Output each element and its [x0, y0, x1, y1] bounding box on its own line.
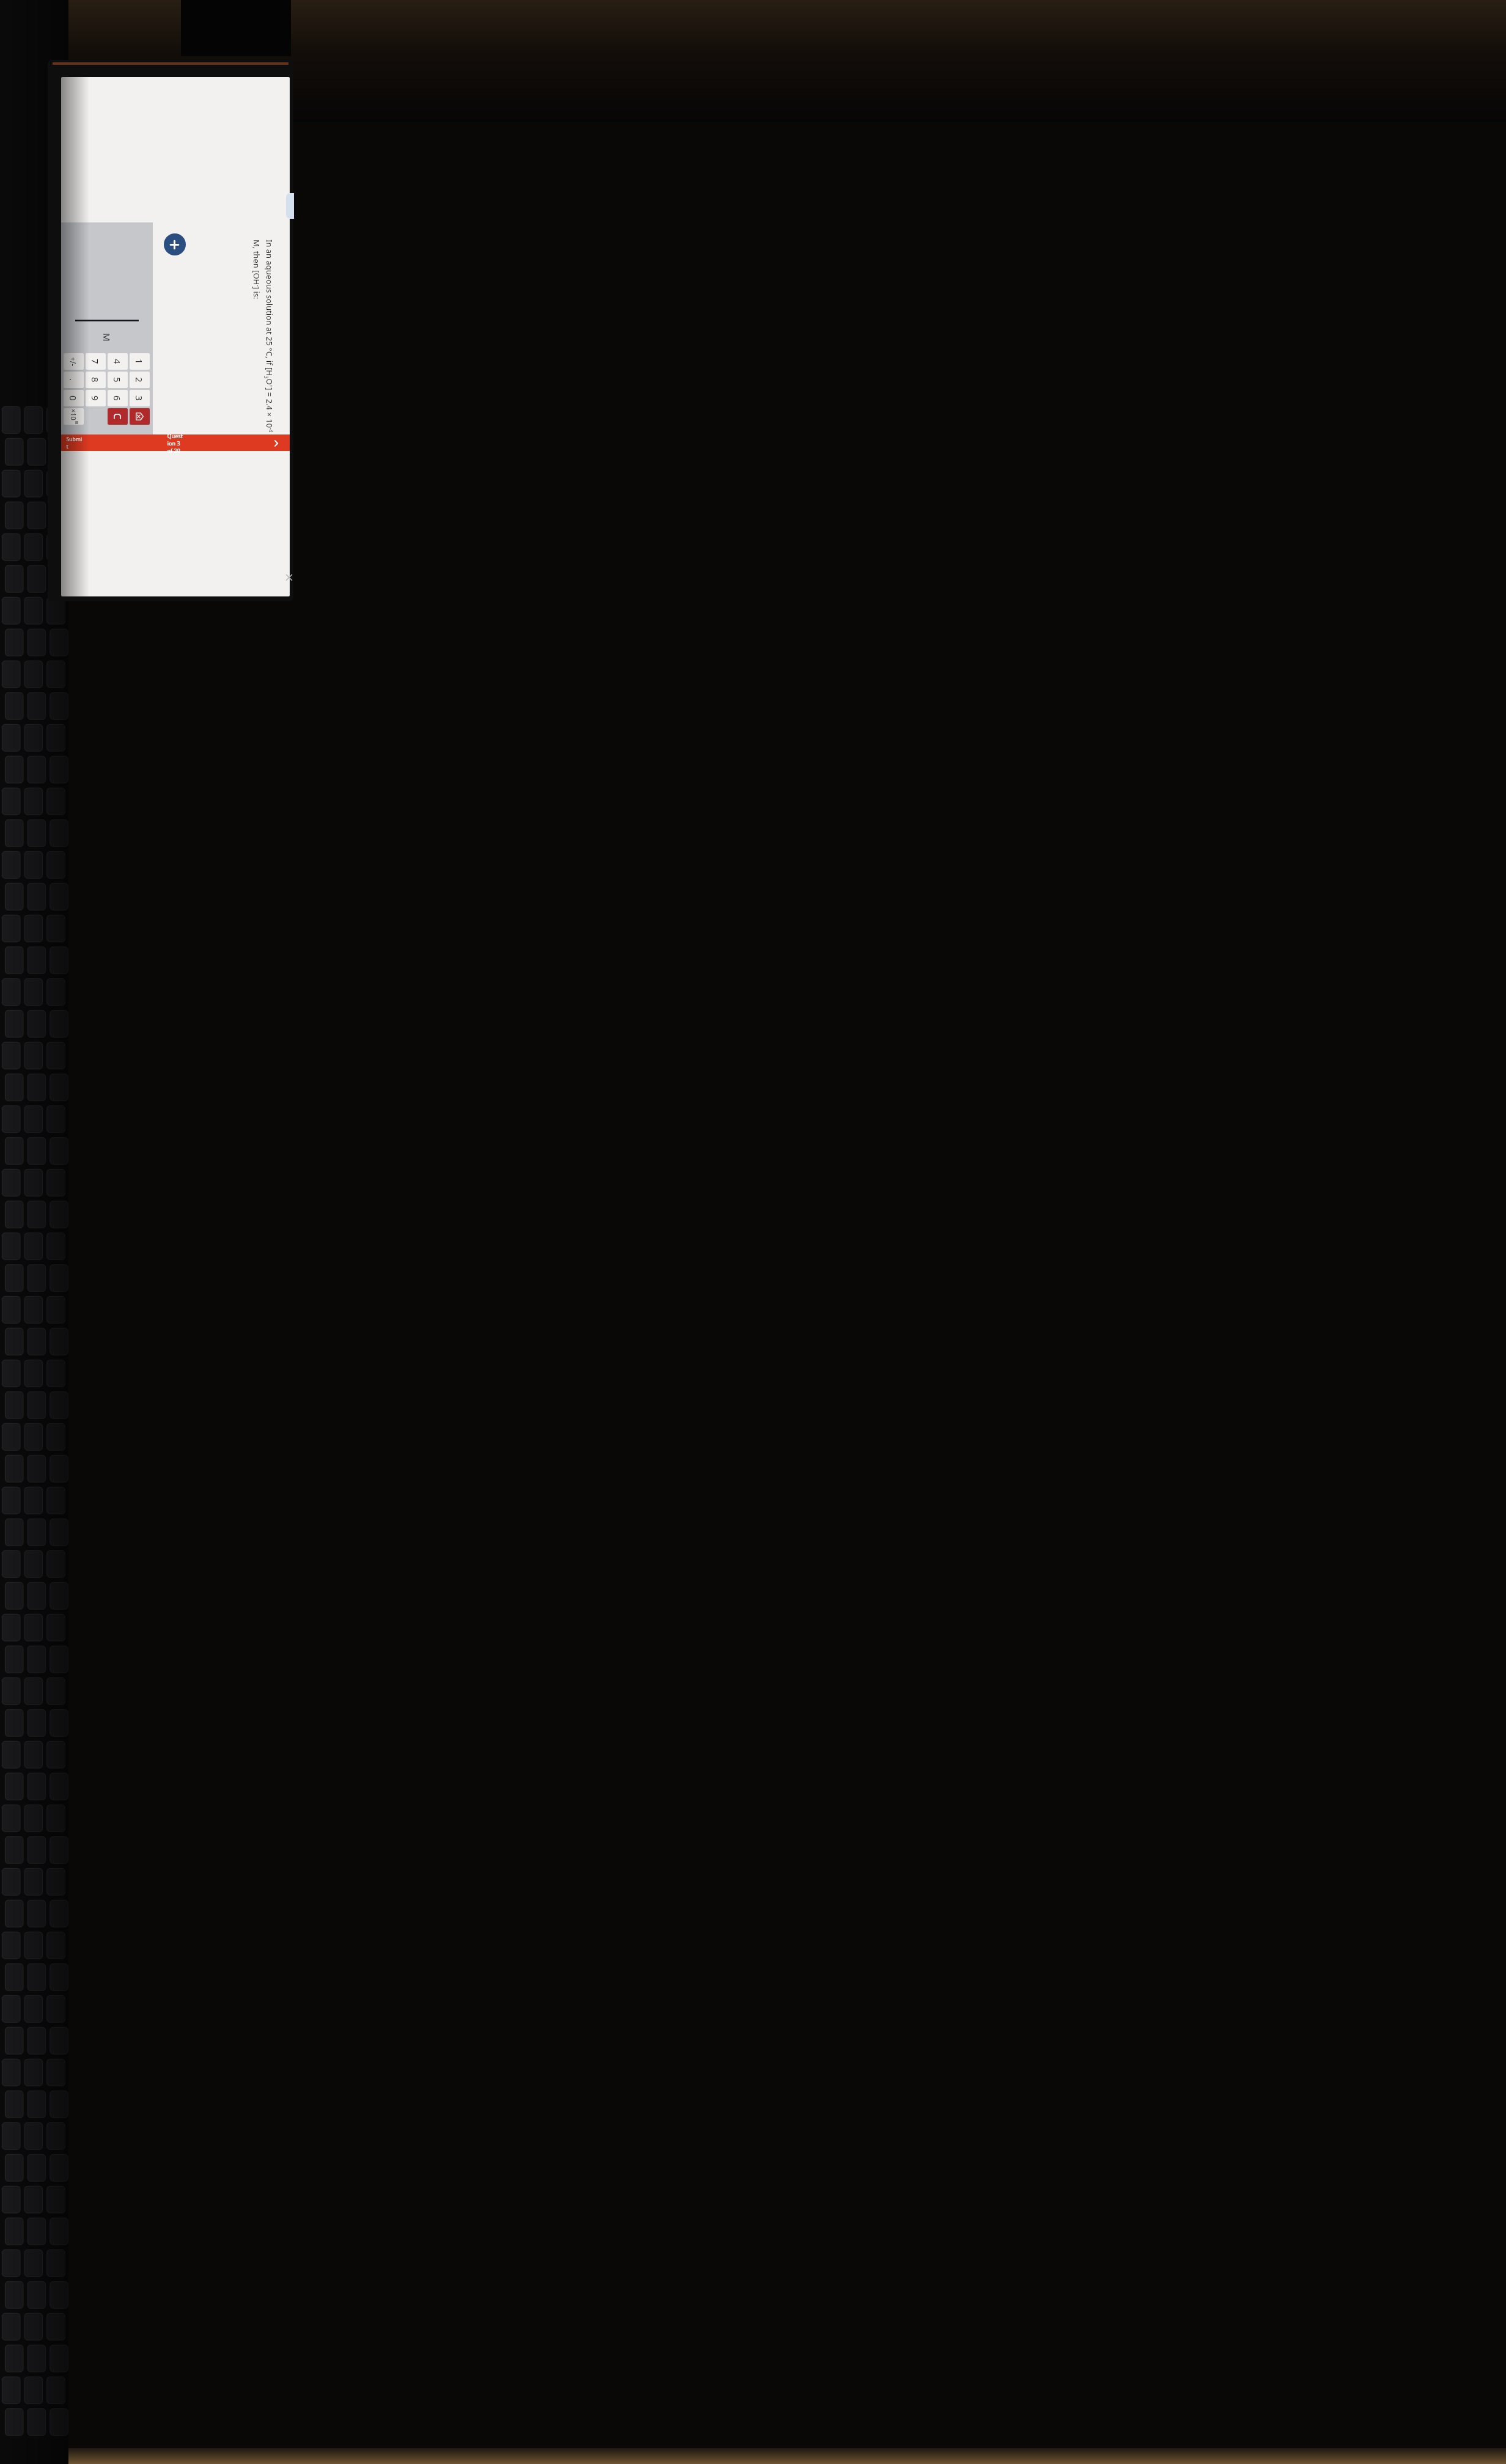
staticText: . [67, 378, 79, 381]
button[interactable]: Add [164, 233, 186, 255]
staticText: 5 [111, 377, 123, 383]
button[interactable]: 8 [86, 372, 106, 388]
staticText: C [111, 413, 124, 420]
staticText: Submit [66, 435, 83, 450]
button[interactable]: 2 [130, 372, 150, 388]
button[interactable]: 5 [108, 372, 128, 388]
staticText: 3 [133, 395, 145, 401]
staticText: In an aqueous solution at 25 °C, if [H3O… [251, 240, 275, 435]
button[interactable]: 7 [86, 353, 106, 370]
button[interactable]: Submit [67, 435, 82, 451]
button[interactable]: +/- [64, 353, 84, 370]
staticText: 7 [89, 359, 101, 364]
button[interactable]: 3 [130, 390, 150, 406]
button[interactable]: . [64, 372, 84, 388]
staticText: 0 [67, 395, 79, 401]
other: Close [285, 573, 293, 582]
button[interactable]: 9 [86, 390, 106, 406]
staticText: Question 3 of 20 [167, 432, 184, 454]
staticText: 2 [133, 377, 145, 383]
staticText: +/- [68, 357, 78, 367]
staticText: 4 [111, 359, 123, 364]
button[interactable]: 4 [108, 353, 128, 370]
button[interactable]: Backspace [130, 408, 150, 425]
staticText: 6 [111, 395, 123, 401]
button[interactable]: Question 3 of 20 [164, 435, 186, 451]
button[interactable]: 0 [64, 390, 84, 406]
button[interactable]: Back [270, 437, 282, 449]
staticText: 8 [89, 377, 101, 383]
button[interactable]: 6 [108, 390, 128, 406]
button[interactable]: Answer [75, 320, 139, 324]
button[interactable]: 1 [130, 353, 150, 370]
staticText: 1 [133, 359, 145, 364]
button[interactable]: Clear [108, 408, 128, 425]
staticText: M [101, 333, 113, 342]
staticText: ×10 [69, 409, 78, 420]
button[interactable]: Times ten to power [64, 408, 84, 425]
staticText: 9 [89, 395, 101, 401]
